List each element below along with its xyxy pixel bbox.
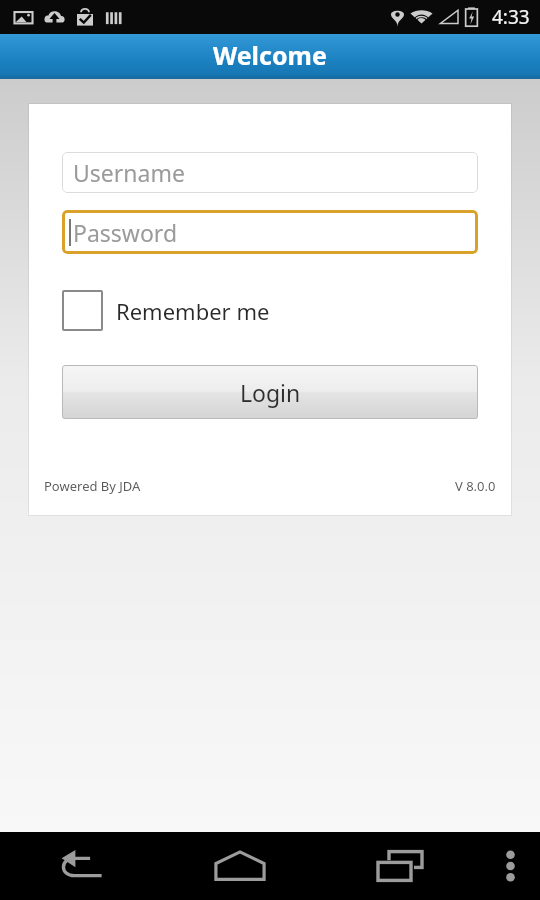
button[interactable]: Recent apps	[320, 832, 480, 900]
button[interactable]: Home	[160, 832, 320, 900]
button[interactable]: Username	[62, 152, 478, 193]
staticText: Remember me	[116, 296, 270, 326]
button[interactable]: Back	[0, 832, 160, 900]
staticText: Powered By JDA	[44, 477, 141, 495]
staticText: 4:33	[492, 4, 530, 30]
staticText: Username	[73, 157, 185, 188]
button[interactable]: More options	[480, 832, 540, 900]
staticText: V 8.0.0	[455, 477, 496, 495]
staticText: Password	[73, 217, 178, 248]
staticText: Login	[240, 377, 301, 408]
button[interactable]: Password	[62, 210, 478, 254]
button[interactable]: Login	[62, 365, 478, 419]
staticText: Welcome	[213, 38, 327, 72]
button[interactable]: Remember me	[62, 290, 270, 331]
